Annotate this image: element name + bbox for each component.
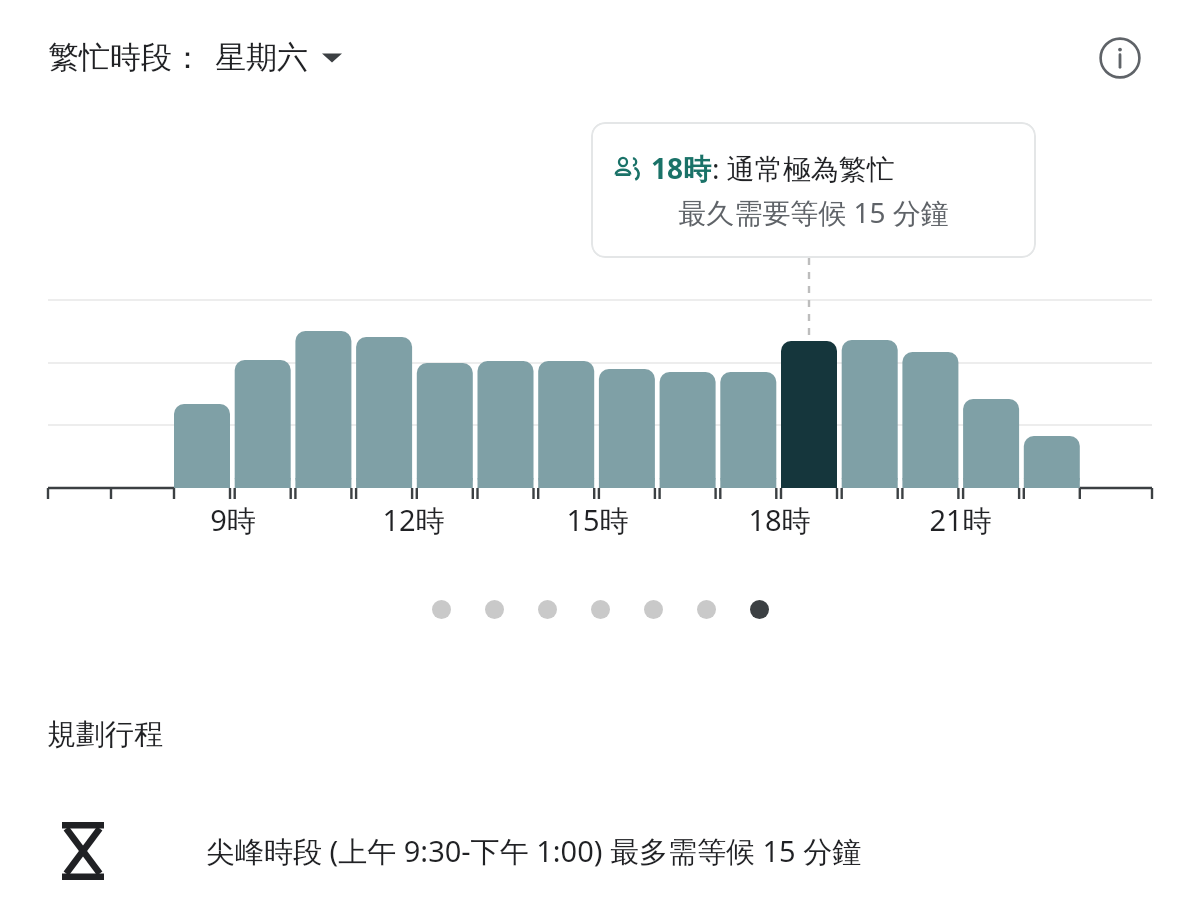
staticText: 規劃行程 [47,716,163,753]
button[interactable]: Page 6 [680,598,733,620]
button[interactable]: Page 1 [415,598,468,620]
staticText: 尖峰時段 (上午 9:30-下午 1:00) 最多需等候 15 分鐘 [206,831,862,871]
staticText: 9時 [210,500,256,540]
button[interactable]: 繁忙時段： [44,34,346,81]
other: Wait time [62,822,104,880]
button[interactable]: Page 7 [733,598,786,620]
staticText: : 通常極為繁忙 [712,149,895,187]
staticText: 18時 [748,500,811,540]
staticText: 21時 [929,500,992,540]
button[interactable]: 18時 [591,122,1036,258]
staticText: 12時 [382,500,445,540]
button[interactable]: Page 2 [468,598,521,620]
staticText: 最久需要等候 15 分鐘 [591,193,1036,231]
staticText: 星期六 [215,38,308,77]
button[interactable]: Information [1094,32,1146,84]
button[interactable]: Page 5 [627,598,680,620]
staticText: 繁忙時段： [48,38,203,77]
button[interactable]: Page 4 [574,598,627,620]
button[interactable]: Wait time [40,806,1160,896]
staticText: 18時 [651,149,712,187]
button[interactable]: Page 3 [521,598,574,620]
staticText: 15時 [566,500,629,540]
